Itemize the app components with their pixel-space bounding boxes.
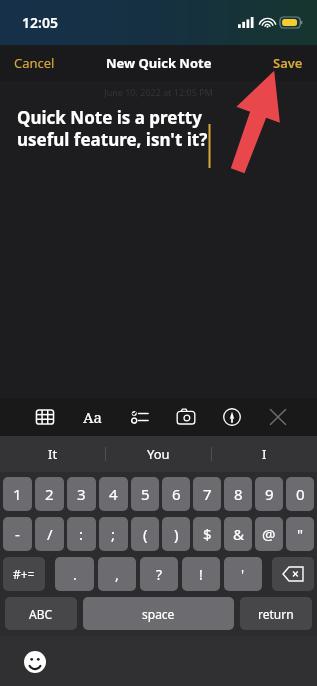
button[interactable]: It [0, 436, 105, 472]
button[interactable]: ' [224, 557, 262, 591]
button[interactable]: 3 [67, 477, 96, 511]
staticText: ' [241, 565, 245, 584]
button[interactable]: ( [131, 517, 159, 551]
button[interactable]: ) [162, 517, 190, 551]
button[interactable]: Markup [217, 402, 247, 432]
button[interactable]: @ [255, 517, 283, 551]
button[interactable]: ? [140, 557, 178, 591]
button[interactable]: Checklist [125, 402, 155, 432]
button[interactable]: Close [263, 402, 293, 432]
staticText: 7 [203, 484, 212, 504]
button[interactable]: space [83, 597, 234, 630]
button[interactable]: : [67, 517, 96, 551]
staticText: June 10, 2022 at 12:05 PM [0, 86, 317, 98]
button[interactable]: Save [259, 48, 317, 78]
staticText: ; [111, 524, 116, 544]
button[interactable]: Cancel [0, 48, 69, 78]
staticText: Save [273, 54, 303, 72]
button[interactable]: 9 [255, 477, 283, 511]
staticText: 9 [265, 484, 274, 504]
staticText: 6 [172, 484, 181, 504]
button[interactable]: 6 [162, 477, 190, 511]
button[interactable]: ; [99, 517, 128, 551]
button[interactable]: ABC [5, 597, 77, 630]
staticText: It [48, 445, 58, 463]
button[interactable]: Insert table [30, 402, 60, 432]
button[interactable]: Emoji [22, 649, 48, 675]
button[interactable]: & [224, 517, 252, 551]
staticText: You [147, 445, 170, 463]
staticText: 3 [77, 484, 86, 504]
staticText: ? [156, 565, 163, 584]
staticText: ABC [29, 606, 53, 622]
button[interactable]: 7 [193, 477, 221, 511]
button[interactable]: , [98, 557, 136, 591]
button[interactable]: #+= [3, 557, 45, 591]
staticText: - [15, 524, 20, 544]
button[interactable]: Aa [77, 401, 109, 433]
staticText: 5 [141, 484, 150, 504]
staticText: / [47, 524, 53, 544]
staticText: I [262, 445, 267, 463]
staticText: Aa [83, 407, 103, 427]
staticText: $ [203, 524, 212, 544]
staticText: , [115, 565, 119, 584]
staticText: 1 [13, 484, 22, 504]
button[interactable]: Backspace [272, 557, 314, 591]
button[interactable]: 1 [3, 477, 32, 511]
button[interactable]: Camera [171, 402, 201, 432]
button[interactable]: 8 [224, 477, 252, 511]
staticText: ) [174, 524, 179, 544]
button[interactable]: 0 [286, 477, 314, 511]
button[interactable]: return [240, 597, 312, 630]
staticText: 0 [296, 484, 305, 504]
staticText: #+= [13, 566, 35, 582]
staticText: Quick Note is a pretty useful feature, i… [17, 106, 208, 151]
button[interactable]: " [286, 517, 314, 551]
staticText: ( [143, 524, 148, 544]
staticText: : [79, 524, 84, 544]
button[interactable]: 4 [99, 477, 128, 511]
button[interactable]: $ [193, 517, 221, 551]
button[interactable]: ! [182, 557, 220, 591]
button[interactable]: - [3, 517, 32, 551]
staticText: return [258, 606, 294, 622]
staticText: 4 [109, 484, 118, 504]
staticText: ! [199, 565, 203, 584]
staticText: New Quick Note [106, 54, 212, 72]
staticText: @ [262, 524, 276, 544]
staticText: 2 [45, 484, 54, 504]
staticText: Cancel [14, 54, 55, 72]
button[interactable]: 5 [131, 477, 159, 511]
staticText: . [73, 565, 77, 584]
button[interactable]: . [55, 557, 94, 591]
button[interactable]: I [212, 436, 317, 472]
staticText: 8 [234, 484, 243, 504]
staticText: 12:05 [22, 13, 58, 32]
staticText: space [142, 606, 175, 622]
button[interactable]: You [106, 436, 211, 472]
button[interactable]: / [35, 517, 64, 551]
staticText: " [297, 524, 304, 544]
staticText: & [233, 524, 244, 544]
button[interactable]: 2 [35, 477, 64, 511]
